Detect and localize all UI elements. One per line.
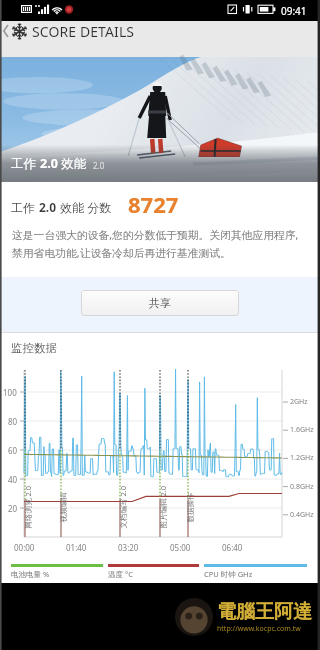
staticText: 2.0 — [39, 199, 57, 215]
staticText: http://www.kocpc.com.tw — [217, 624, 301, 634]
staticText: 80 — [8, 416, 18, 427]
staticText: 2.0 — [93, 160, 105, 171]
staticText: CPU 时钟 GHz — [204, 569, 253, 579]
staticText: 60 — [8, 445, 18, 456]
staticText: SCORE DETAILS — [32, 22, 135, 41]
button[interactable]: 共享 — [81, 290, 239, 316]
staticText: 05:00 — [170, 542, 191, 553]
staticText: 01:40 — [66, 542, 87, 553]
staticText: 06:40 — [222, 542, 243, 553]
staticText: 8727 — [128, 189, 179, 219]
staticText: 电池电量 % — [11, 569, 50, 579]
staticText: 09:41 — [281, 4, 307, 18]
staticText: 效能 分数 — [57, 199, 112, 215]
staticText: 40 — [8, 474, 18, 485]
staticText: 0.4GHz — [290, 510, 314, 520]
staticText: 1.6GHz — [290, 425, 314, 435]
staticText: 2.0 — [40, 155, 58, 172]
staticText: 電腦王阿達 — [217, 600, 312, 624]
staticText: 2GHz — [290, 397, 308, 407]
staticText: 共享 — [149, 296, 171, 310]
staticText: 网络浏览 2.0 — [22, 485, 32, 528]
staticText: 工作 — [11, 155, 40, 172]
staticText: 工作 — [11, 199, 39, 215]
staticText: 温度 °C — [108, 569, 133, 579]
staticText: 0.8GHz — [290, 482, 314, 492]
staticText: 00:00 — [14, 542, 35, 553]
staticText: 文档编写 2.0 — [117, 485, 127, 528]
staticText: 图片编辑 2.0 — [157, 485, 167, 528]
staticText: 效能 — [58, 155, 87, 172]
button[interactable]: Back — [0, 21, 11, 41]
staticText: 这是一台强大的设备,您的分数低于预期。关闭其他应用程序,禁用省电功能,让设备冷却… — [12, 227, 299, 260]
staticText: 03:20 — [118, 542, 139, 553]
staticText: 监控数据 — [11, 341, 57, 355]
staticText: 1.2GHz — [290, 453, 314, 463]
staticText: 20 — [8, 503, 18, 514]
staticText: 100 — [3, 387, 17, 398]
staticText: 数据操作 — [185, 492, 194, 522]
staticText: 视频编辑 — [58, 492, 67, 522]
